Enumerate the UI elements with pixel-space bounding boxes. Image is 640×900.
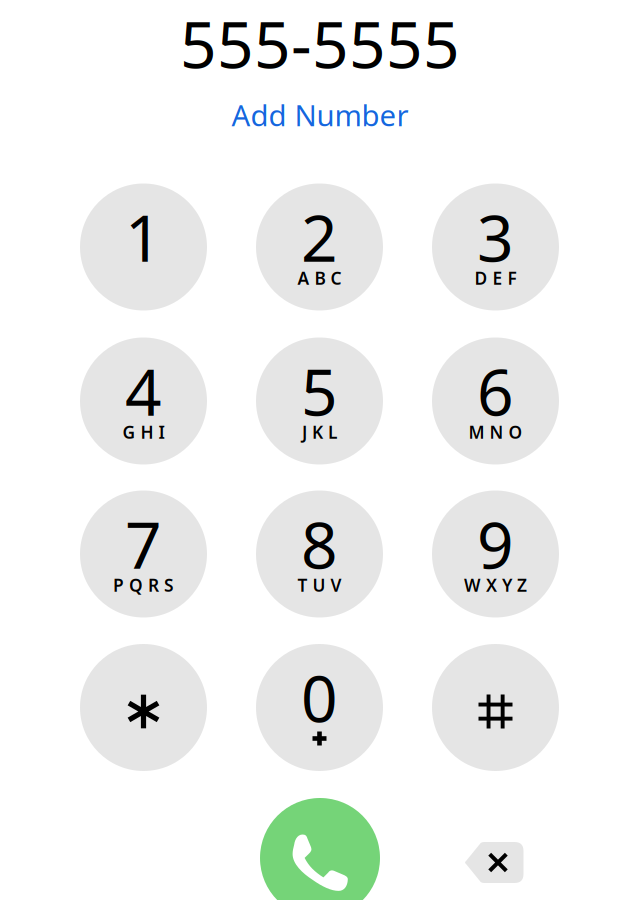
staticText: 0 (301, 655, 338, 740)
button[interactable]: Call (260, 798, 380, 900)
staticText: 7 (125, 501, 162, 586)
staticText: J K L (302, 420, 337, 443)
staticText: 6 (477, 348, 514, 433)
button[interactable]: 0 (256, 644, 383, 771)
staticText: D E F (474, 266, 516, 289)
button[interactable]: 2 (256, 183, 383, 310)
staticText: W X Y Z (464, 573, 527, 596)
staticText: A B C (297, 266, 341, 289)
staticText: P Q R S (113, 573, 174, 596)
button[interactable]: 1 (80, 183, 207, 310)
staticText: 5 (301, 348, 338, 433)
staticText: 1 (125, 194, 162, 279)
staticText: 3 (477, 194, 514, 279)
staticText: 4 (125, 348, 162, 433)
button[interactable]: 9 (432, 490, 559, 617)
button[interactable]: 6 (432, 337, 559, 464)
staticText: 555-5555 (180, 1, 460, 86)
staticText: M N O (468, 420, 522, 443)
staticText: G H I (122, 420, 164, 443)
button[interactable]: Delete (464, 842, 523, 883)
staticText: 8 (301, 501, 338, 586)
staticText: Add Number (231, 95, 408, 134)
staticText: T U V (297, 573, 341, 596)
button[interactable]: 5 (256, 337, 383, 464)
button[interactable]: 8 (256, 490, 383, 617)
button[interactable]: Star (80, 644, 207, 771)
button[interactable]: 4 (80, 337, 207, 464)
button[interactable]: Add Number (231, 95, 408, 134)
staticText: 9 (477, 501, 514, 586)
staticText: 2 (301, 194, 338, 279)
button[interactable]: Pound (432, 644, 559, 771)
button[interactable]: 7 (80, 490, 207, 617)
button[interactable]: 3 (432, 183, 559, 310)
